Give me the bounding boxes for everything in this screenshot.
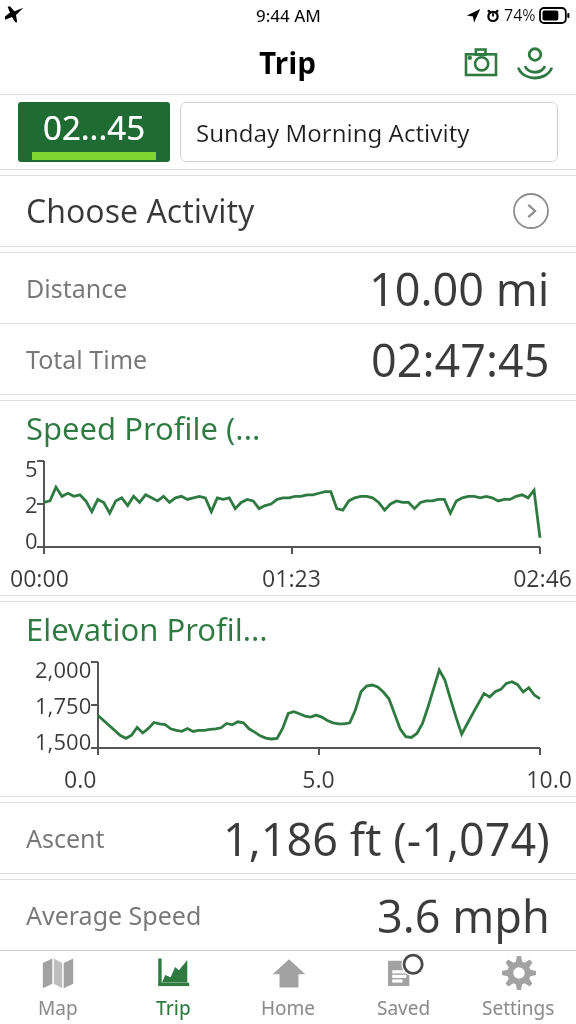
staticText: Elevation Profil... [26, 608, 268, 650]
staticText: 1,500 [35, 726, 92, 756]
staticText: 10.00 mi [369, 258, 550, 319]
staticText: 74% [504, 4, 536, 26]
staticText: 2 [25, 489, 38, 519]
button[interactable]: Elevation Profil... [0, 602, 576, 796]
staticText: Saved [377, 995, 431, 1021]
staticText: 02:47:45 [371, 329, 550, 390]
staticText: Sunday Morning Activity [196, 116, 470, 149]
staticText: 02:46 [385, 562, 572, 593]
staticText: 02...45 [43, 105, 146, 150]
button[interactable]: Choose Activity [0, 176, 576, 246]
button[interactable]: Map [0, 951, 116, 1024]
staticText: 01:23 [198, 562, 385, 593]
button[interactable]: Take photo [456, 37, 506, 87]
staticText: Total Time [26, 342, 148, 376]
button[interactable]: Speed Profile (... [0, 401, 576, 595]
button[interactable]: Total Time [0, 324, 576, 394]
staticText: Home [261, 995, 316, 1021]
staticText: 00:00 [10, 562, 198, 593]
staticText: 1,750 [35, 690, 92, 720]
button[interactable]: 02...45 [18, 102, 170, 162]
button[interactable]: Broadcast location [510, 37, 560, 87]
staticText: Ascent [26, 821, 105, 855]
button[interactable]: Home [231, 951, 346, 1024]
staticText: 5.0 [234, 763, 403, 794]
staticText: 0.0 [64, 763, 234, 794]
button[interactable]: Distance [0, 253, 576, 323]
staticText: 1,186 ft (-1,074) [223, 808, 550, 869]
staticText: 3.6 mph [377, 885, 550, 946]
staticText: Choose Activity [26, 189, 255, 233]
button[interactable]: Saved [346, 951, 461, 1024]
button[interactable]: Settings [461, 951, 576, 1024]
staticText: Trip [259, 42, 317, 83]
button[interactable]: Ascent [0, 803, 576, 873]
staticText: 2,000 [35, 654, 92, 684]
staticText: Map [38, 995, 78, 1021]
button[interactable]: Sunday Morning Activity [180, 102, 558, 162]
staticText: 10.0 [403, 763, 572, 794]
button[interactable]: Trip [116, 951, 231, 1024]
button[interactable]: Average Speed [0, 880, 576, 950]
staticText: Average Speed [26, 898, 202, 932]
staticText: Speed Profile (... [26, 407, 261, 449]
staticText: 0 [25, 525, 38, 555]
staticText: 5 [25, 453, 38, 483]
staticText: Trip [156, 995, 191, 1021]
staticText: 9:44 AM [256, 4, 321, 27]
staticText: Distance [26, 271, 128, 305]
staticText: Settings [482, 995, 555, 1021]
